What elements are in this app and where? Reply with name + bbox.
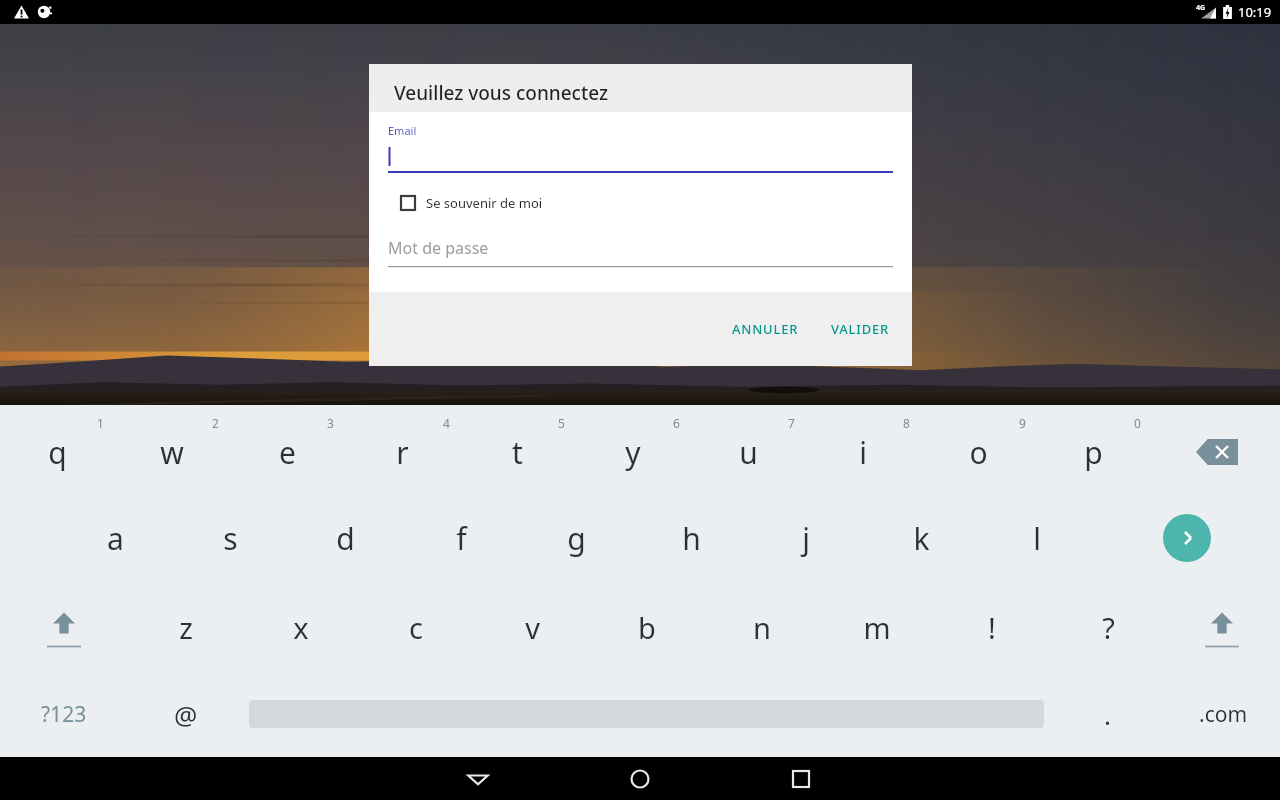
- staticText: b: [638, 608, 656, 647]
- button[interactable]: 8: [862, 393, 950, 453]
- button[interactable]: .com: [1180, 686, 1266, 742]
- button[interactable]: Mot de passe: [388, 237, 893, 267]
- button[interactable]: b: [603, 597, 691, 657]
- staticText: j: [802, 518, 810, 559]
- button[interactable]: 3: [286, 393, 374, 453]
- button[interactable]: [388, 145, 893, 173]
- button[interactable]: s: [186, 508, 274, 568]
- staticText: 5: [558, 415, 565, 431]
- button[interactable]: w: [128, 422, 216, 482]
- staticText: Email: [388, 123, 417, 138]
- staticText: 1: [97, 415, 104, 431]
- staticText: o: [969, 432, 988, 473]
- staticText: i: [859, 432, 867, 473]
- button[interactable]: 2: [171, 393, 259, 453]
- staticText: 10:19: [1238, 3, 1272, 21]
- staticText: l: [1033, 518, 1041, 559]
- staticText: ?123: [41, 700, 87, 729]
- staticText: 4G: [1196, 3, 1206, 13]
- button[interactable]: Se souvenir de moi: [388, 190, 893, 216]
- button[interactable]: Shift: [24, 597, 104, 657]
- button[interactable]: Backspace: [1186, 424, 1248, 480]
- staticText: VALIDER: [831, 320, 890, 338]
- staticText: 4: [443, 415, 450, 431]
- button[interactable]: t: [473, 422, 561, 482]
- button[interactable]: q: [13, 422, 101, 482]
- button[interactable]: Home: [610, 757, 670, 800]
- staticText: ANNULER: [732, 320, 799, 338]
- button[interactable]: .: [1076, 686, 1138, 742]
- button[interactable]: l: [993, 508, 1081, 568]
- button[interactable]: VALIDER: [819, 310, 902, 348]
- staticText: a: [107, 518, 124, 559]
- button[interactable]: u: [704, 422, 792, 482]
- button[interactable]: r: [358, 422, 446, 482]
- staticText: z: [179, 608, 193, 647]
- button[interactable]: c: [372, 597, 460, 657]
- button[interactable]: o: [934, 422, 1022, 482]
- staticText: 8: [903, 415, 910, 431]
- staticText: 7: [788, 415, 795, 431]
- button[interactable]: h: [647, 508, 735, 568]
- button[interactable]: x: [257, 597, 345, 657]
- button[interactable]: n: [718, 597, 806, 657]
- staticText: e: [279, 432, 296, 473]
- staticText: d: [336, 518, 355, 559]
- button[interactable]: @: [150, 686, 222, 742]
- button[interactable]: ?123: [14, 686, 114, 742]
- staticText: 3: [327, 415, 334, 431]
- button[interactable]: k: [877, 508, 965, 568]
- staticText: n: [753, 608, 771, 647]
- button[interactable]: f: [417, 508, 505, 568]
- button[interactable]: p: [1049, 422, 1137, 482]
- staticText: 9: [1019, 415, 1026, 431]
- staticText: t: [512, 432, 523, 473]
- button[interactable]: d: [301, 508, 389, 568]
- button[interactable]: Recent apps: [771, 757, 831, 800]
- button[interactable]: 0: [1093, 393, 1181, 453]
- staticText: g: [567, 518, 586, 559]
- button[interactable]: ANNULER: [720, 310, 811, 348]
- button[interactable]: y: [589, 422, 677, 482]
- button[interactable]: i: [819, 422, 907, 482]
- button[interactable]: m: [833, 597, 921, 657]
- button[interactable]: 9: [978, 393, 1066, 453]
- button[interactable]: 1: [56, 393, 144, 453]
- button[interactable]: 4: [402, 393, 490, 453]
- staticText: ?: [1102, 608, 1115, 647]
- staticText: h: [682, 518, 701, 559]
- button[interactable]: 6: [632, 393, 720, 453]
- button[interactable]: g: [532, 508, 620, 568]
- button[interactable]: Enter: [1163, 514, 1211, 562]
- button[interactable]: 5: [517, 393, 605, 453]
- button[interactable]: v: [488, 597, 576, 657]
- staticText: c: [409, 608, 423, 647]
- staticText: 2: [212, 415, 219, 431]
- staticText: u: [739, 432, 758, 473]
- staticText: 6: [673, 415, 680, 431]
- button[interactable]: Shift: [1182, 597, 1262, 657]
- button[interactable]: !: [948, 597, 1036, 657]
- staticText: p: [1084, 432, 1103, 473]
- staticText: Mot de passe: [388, 237, 489, 259]
- staticText: 0: [1134, 415, 1141, 431]
- staticText: y: [625, 432, 641, 473]
- staticText: v: [525, 608, 540, 647]
- staticText: q: [48, 432, 67, 473]
- staticText: r: [396, 432, 409, 473]
- button[interactable]: ?: [1064, 597, 1152, 657]
- staticText: w: [160, 432, 184, 473]
- staticText: @: [174, 697, 198, 732]
- staticText: x: [293, 608, 309, 647]
- button[interactable]: a: [71, 508, 159, 568]
- staticText: .com: [1199, 700, 1248, 729]
- button[interactable]: 7: [747, 393, 835, 453]
- button[interactable]: Back: [448, 757, 508, 800]
- button[interactable]: j: [762, 508, 850, 568]
- staticText: Se souvenir de moi: [426, 194, 543, 212]
- button[interactable]: e: [243, 422, 331, 482]
- staticText: s: [223, 518, 238, 559]
- button[interactable]: z: [142, 597, 230, 657]
- staticText: k: [913, 518, 930, 559]
